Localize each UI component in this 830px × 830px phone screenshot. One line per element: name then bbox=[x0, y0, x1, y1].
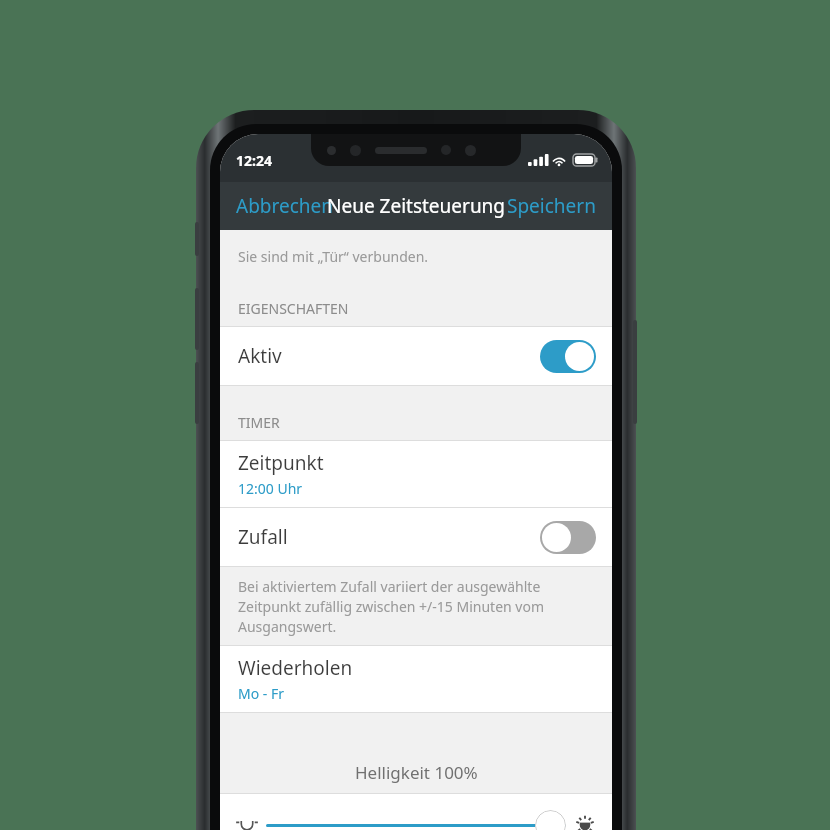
staticText: 12:00 Uhr bbox=[238, 479, 303, 498]
staticText: Mo - Fr bbox=[238, 684, 285, 703]
staticText: Zufall bbox=[238, 524, 288, 550]
staticText: Speichern bbox=[507, 193, 596, 219]
staticText: 12:24 bbox=[236, 151, 272, 170]
button[interactable]: Brightness slider bbox=[266, 805, 566, 830]
button[interactable]: Abbrechen bbox=[220, 185, 350, 227]
other: Dim bbox=[234, 812, 260, 830]
staticText: Helligkeit 100% bbox=[355, 761, 478, 784]
staticText: TIMER bbox=[238, 413, 280, 432]
staticText: Bei aktiviertem Zufall variiert der ausg… bbox=[238, 577, 598, 636]
button[interactable]: Zeitpunkt bbox=[220, 441, 612, 507]
button[interactable]: Wiederholen bbox=[220, 646, 612, 712]
staticText: Zeitpunkt bbox=[238, 450, 324, 476]
button[interactable]: Switch off bbox=[540, 521, 596, 554]
staticText: Wiederholen bbox=[238, 655, 353, 681]
staticText: Abbrechen bbox=[236, 193, 334, 219]
staticText: EIGENSCHAFTEN bbox=[238, 299, 349, 318]
button[interactable]: Switch on bbox=[540, 340, 596, 373]
staticText: Sie sind mit „Tür“ verbunden. bbox=[238, 247, 429, 266]
button[interactable]: Aktiv bbox=[220, 327, 612, 385]
button[interactable]: Zufall bbox=[220, 508, 612, 566]
staticText: Aktiv bbox=[238, 343, 282, 369]
other: Bright bbox=[572, 812, 598, 830]
staticText: Neue Zeitsteuerung bbox=[327, 193, 506, 219]
button[interactable]: Speichern bbox=[491, 185, 612, 227]
